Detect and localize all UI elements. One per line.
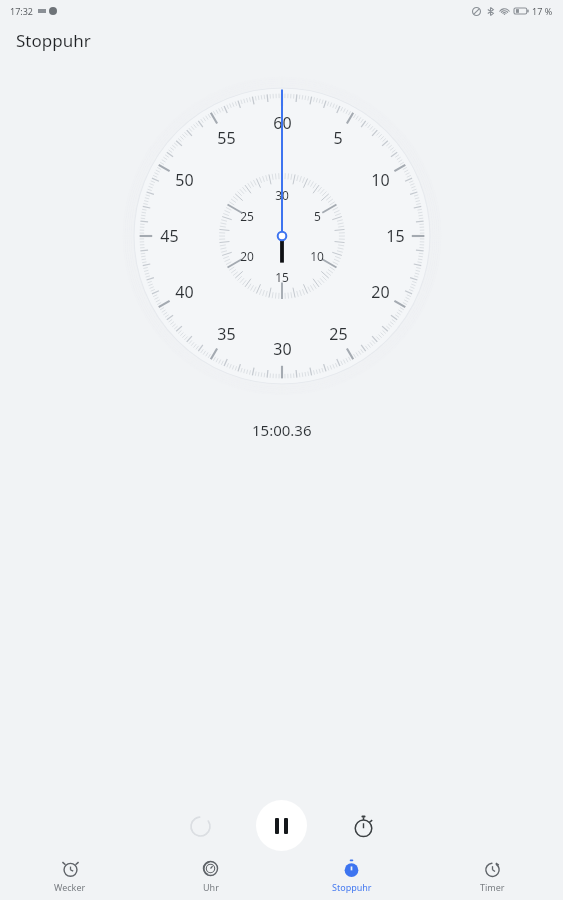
staticText: 20 xyxy=(240,248,254,264)
button[interactable]: Reset xyxy=(175,801,225,851)
staticText: 30 xyxy=(275,187,289,203)
button[interactable]: Stoppuhr xyxy=(281,852,422,900)
button[interactable]: Timer xyxy=(422,852,563,900)
staticText: 60 xyxy=(273,112,292,134)
staticText: Uhr xyxy=(203,881,219,893)
staticText: 10 xyxy=(371,169,390,191)
staticText: 5 xyxy=(333,127,343,149)
staticText: 17 % xyxy=(532,5,553,17)
staticText: 10 xyxy=(310,248,324,264)
button[interactable]: Uhr xyxy=(140,852,281,900)
button[interactable]: Wecker xyxy=(0,852,140,900)
staticText: 25 xyxy=(240,208,254,224)
staticText: 50 xyxy=(175,169,194,191)
staticText: 15 xyxy=(386,225,405,247)
staticText: 35 xyxy=(217,323,236,345)
staticText: Stoppuhr xyxy=(16,29,91,52)
staticText: 17:32 xyxy=(10,5,34,17)
staticText: Wecker xyxy=(54,881,86,893)
staticText: Timer xyxy=(480,881,505,893)
staticText: 15:00.36 xyxy=(252,420,312,440)
staticText: 5 xyxy=(314,208,321,224)
staticText: 15 xyxy=(275,269,289,285)
staticText: 45 xyxy=(160,225,179,247)
staticText: 55 xyxy=(217,127,236,149)
button[interactable]: Pause xyxy=(256,800,307,851)
staticText: Stoppuhr xyxy=(332,881,372,893)
staticText: 40 xyxy=(175,281,194,303)
staticText: 30 xyxy=(273,338,292,360)
staticText: 20 xyxy=(371,281,390,303)
staticText: 25 xyxy=(329,323,348,345)
button[interactable]: Lap xyxy=(338,801,388,851)
